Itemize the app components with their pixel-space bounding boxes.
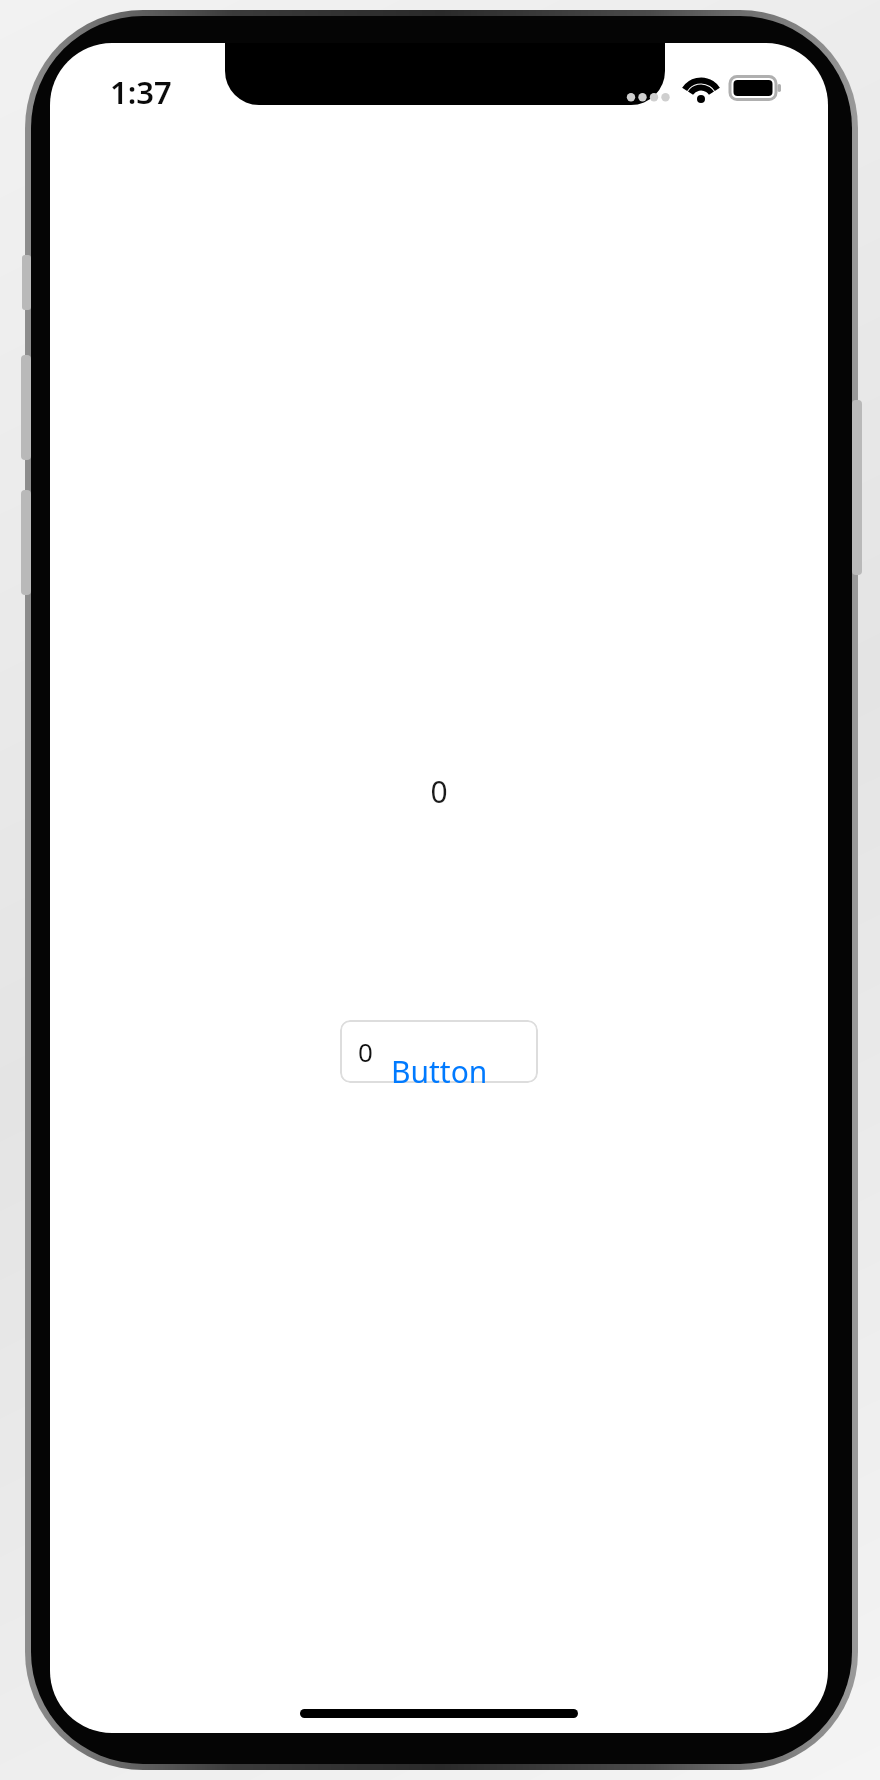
staticText: 1:37 bbox=[110, 71, 172, 113]
other: Volume down bbox=[21, 490, 31, 595]
button[interactable]: Button bbox=[377, 1045, 502, 1098]
other: Volume up bbox=[21, 355, 31, 460]
button[interactable]: 0 bbox=[340, 1020, 538, 1083]
staticText: Button bbox=[391, 1051, 488, 1092]
other: Silent switch bbox=[22, 255, 31, 310]
staticText: 0 bbox=[358, 1034, 373, 1069]
staticText: 0 bbox=[50, 771, 828, 812]
